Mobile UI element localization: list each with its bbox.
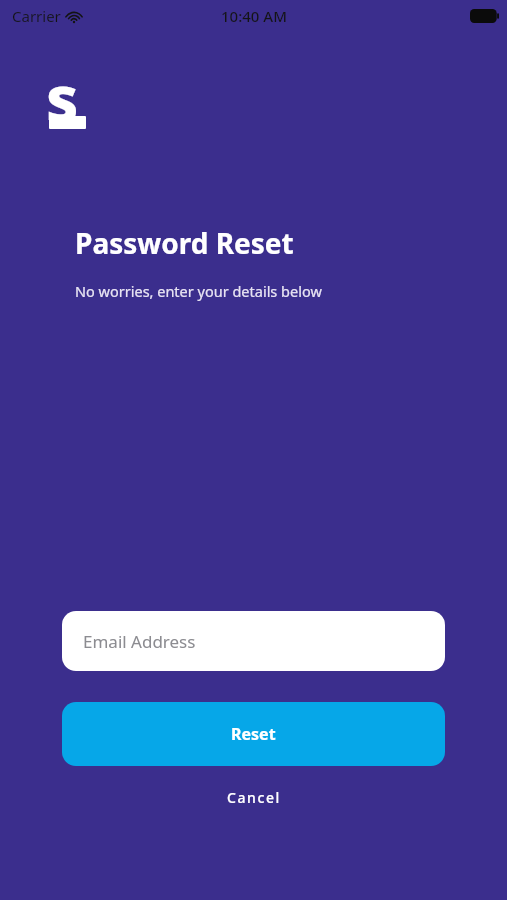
button[interactable]: Cancel [62,778,445,816]
staticText: s [46,54,79,120]
staticText: Password Reset [75,224,294,262]
staticText: No worries, enter your details below [75,281,322,301]
button[interactable]: Email Address [62,611,445,671]
button[interactable]: Reset [62,702,445,766]
staticText: 10:40 AM [221,6,287,26]
staticText: Reset [231,723,276,745]
staticText: Carrier [12,6,61,26]
staticText: Cancel [227,788,281,807]
staticText: Email Address [83,630,196,653]
